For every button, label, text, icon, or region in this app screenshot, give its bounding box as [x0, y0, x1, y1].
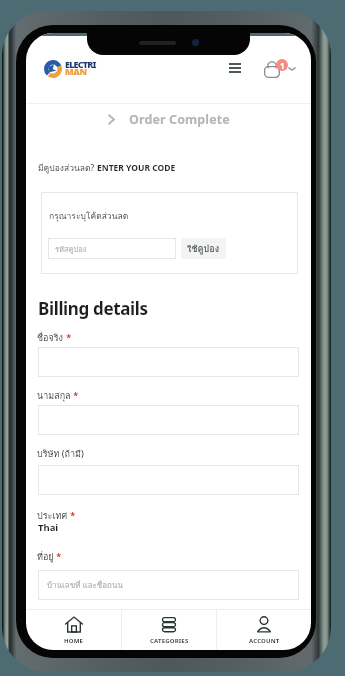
button[interactable]: Electric Man home	[44, 60, 100, 78]
button[interactable]: บ้านเลขที่ และชื่อถนน	[38, 570, 299, 600]
staticText: บริษัท (ถ้ามี)	[37, 447, 84, 461]
staticText: ที่อยู่	[37, 550, 54, 564]
staticText: HOME	[64, 637, 84, 645]
staticText: นามสกุล	[37, 389, 71, 403]
staticText: Order Complete	[129, 111, 230, 128]
button[interactable]: Menu	[224, 57, 246, 79]
button[interactable]: CATEGORIES	[122, 610, 216, 650]
staticText: กรุณาระบุโค้ดส่วนลด	[49, 209, 129, 223]
staticText: Thai	[38, 521, 59, 534]
staticText: รหัสคูปอง	[55, 243, 87, 255]
button[interactable]	[38, 405, 299, 435]
staticText: ENTER YOUR CODE	[97, 162, 176, 174]
staticText: ประเทศ	[37, 509, 68, 523]
staticText: ELECTRIC	[65, 58, 99, 74]
button[interactable]: Expand menu	[284, 61, 300, 77]
staticText: CATEGORIES	[150, 637, 189, 645]
staticText: *	[71, 389, 79, 401]
staticText: บ้านเลขที่ และชื่อถนน	[47, 579, 123, 592]
button[interactable]	[38, 347, 299, 377]
staticText: *	[64, 331, 72, 343]
button[interactable]	[38, 465, 299, 495]
staticText: *	[54, 550, 62, 562]
staticText: *	[68, 509, 76, 521]
button[interactable]: ACCOUNT	[217, 610, 311, 650]
staticText: ใช้คูปอง	[187, 242, 220, 256]
button[interactable]: HOME	[26, 610, 121, 650]
staticText: ACCOUNT	[249, 637, 280, 645]
button[interactable]: ใช้คูปอง	[181, 238, 226, 259]
button[interactable]: รหัสคูปอง	[48, 238, 176, 259]
staticText: Billing details	[38, 297, 148, 320]
staticText: MAN	[65, 65, 87, 77]
staticText: ชื่อจริง	[37, 331, 64, 345]
button[interactable]: Shopping cart	[259, 55, 285, 81]
staticText: 1	[280, 60, 285, 71]
staticText: มีคูปองส่วนลด?	[38, 161, 97, 175]
